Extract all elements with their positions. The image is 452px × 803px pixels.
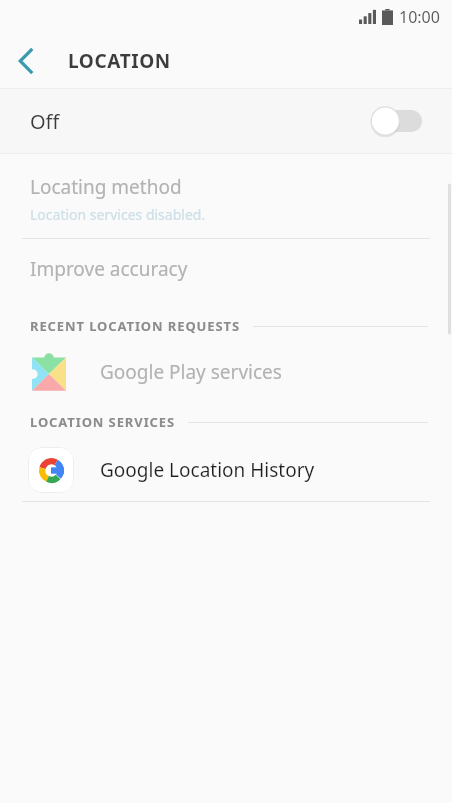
button[interactable]: Off	[0, 89, 452, 153]
staticText: RECENT LOCATION REQUESTS	[30, 317, 241, 335]
staticText: Locating method	[30, 174, 182, 200]
button[interactable]: Google Location History	[0, 439, 452, 501]
staticText: Improve accuracy	[30, 256, 188, 282]
staticText: Off	[30, 108, 60, 135]
staticText: LOCATION	[68, 48, 171, 74]
staticText: 10:00	[399, 6, 440, 28]
button[interactable]: Google Play services	[0, 343, 452, 401]
staticText: Location services disabled.	[30, 205, 206, 224]
staticText: LOCATION SERVICES	[30, 413, 176, 431]
staticText: Google Location History	[100, 457, 315, 483]
button[interactable]: Improve accuracy	[0, 239, 452, 299]
button[interactable]: Back	[0, 35, 52, 87]
button[interactable]: Locating method	[0, 162, 452, 238]
staticText: Google Play services	[100, 359, 282, 385]
